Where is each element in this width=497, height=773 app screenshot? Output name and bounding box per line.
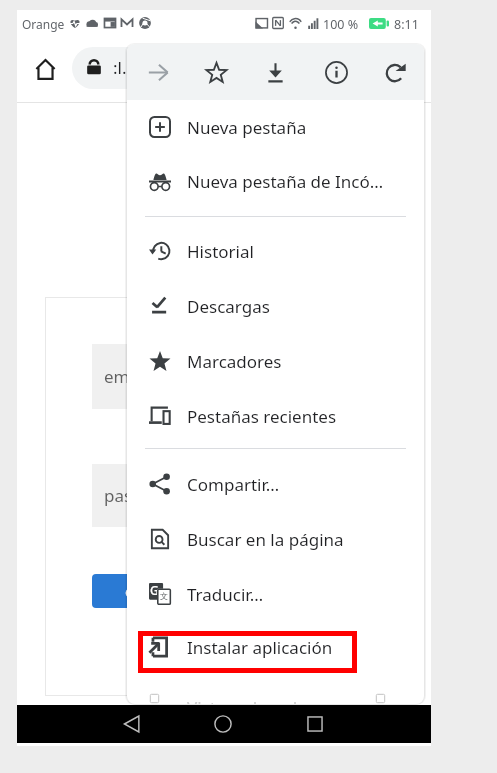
staticText: Nueva pestaña de Incó… <box>187 170 384 193</box>
button[interactable]: Marcadores <box>127 337 424 385</box>
staticText: :l.a <box>113 56 137 79</box>
staticText: entrar <box>125 581 169 601</box>
staticText: Buscar en la página <box>187 528 344 551</box>
button[interactable]: Download <box>254 51 296 93</box>
staticText: 100 % <box>323 16 359 33</box>
button[interactable]: Buscar en la página <box>127 515 424 563</box>
button[interactable]: :l.a <box>72 47 372 89</box>
staticText: Descargas <box>187 295 270 318</box>
staticText: Historial <box>187 240 254 263</box>
staticText: Marcadores <box>187 350 282 373</box>
staticText: Vista ordenador <box>187 696 315 704</box>
staticText: Instalar aplicación <box>187 636 333 659</box>
staticText: Pestañas recientes <box>187 405 337 428</box>
button[interactable]: Forward <box>137 51 179 93</box>
button[interactable]: Back <box>112 705 152 743</box>
button[interactable]: entrar <box>92 574 202 608</box>
staticText: G <box>150 582 159 598</box>
button[interactable]: Reload <box>375 51 417 93</box>
button[interactable]: Nueva pestaña de Incó… <box>127 157 424 205</box>
button[interactable]: Page info <box>315 51 357 93</box>
button[interactable]: Compartir… <box>127 460 424 508</box>
button[interactable]: Historial <box>127 227 424 275</box>
button[interactable]: Pestañas recientes <box>127 392 424 440</box>
staticText: email <box>104 365 148 388</box>
staticText: Compartir… <box>187 473 280 496</box>
button[interactable]: Instalar aplicación <box>127 623 424 671</box>
staticText: Nueva pestaña <box>187 116 307 139</box>
staticText: 文 <box>160 591 168 601</box>
button[interactable]: G <box>127 570 424 618</box>
staticText: Traducir… <box>187 583 264 606</box>
button[interactable]: Recents <box>295 705 335 743</box>
button[interactable]: Home <box>203 705 243 743</box>
button[interactable]: Nueva pestaña <box>127 103 424 151</box>
button[interactable]: Bookmark <box>195 51 237 93</box>
staticText: password <box>104 484 182 507</box>
button[interactable]: Home <box>24 48 66 90</box>
staticText: 8:11 <box>394 16 419 33</box>
staticText: Orange <box>22 16 65 32</box>
button[interactable]: Descargas <box>127 282 424 330</box>
